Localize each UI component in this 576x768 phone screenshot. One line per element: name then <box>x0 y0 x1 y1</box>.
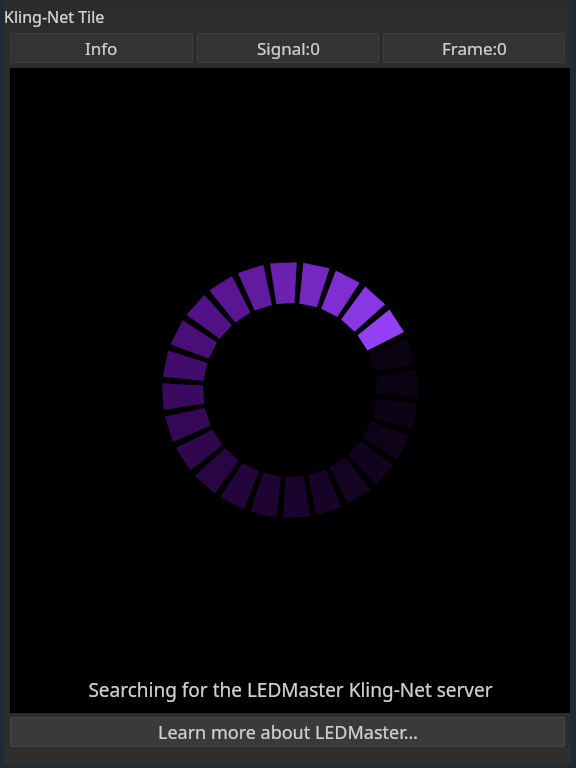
staticText: Frame:0 <box>442 37 507 60</box>
staticText: Signal:0 <box>257 37 320 60</box>
staticText: Info <box>85 37 118 60</box>
other: Searching <box>10 68 570 713</box>
button[interactable]: Learn more about LEDMaster… <box>10 717 565 747</box>
staticText: Searching for the LEDMaster Kling-Net se… <box>88 677 493 703</box>
button[interactable]: Signal:0 <box>197 33 379 63</box>
button[interactable]: Frame:0 <box>383 33 565 63</box>
button[interactable]: Info <box>10 33 193 63</box>
staticText: Kling-Net Tile <box>4 6 105 28</box>
staticText: Learn more about LEDMaster… <box>158 720 418 745</box>
